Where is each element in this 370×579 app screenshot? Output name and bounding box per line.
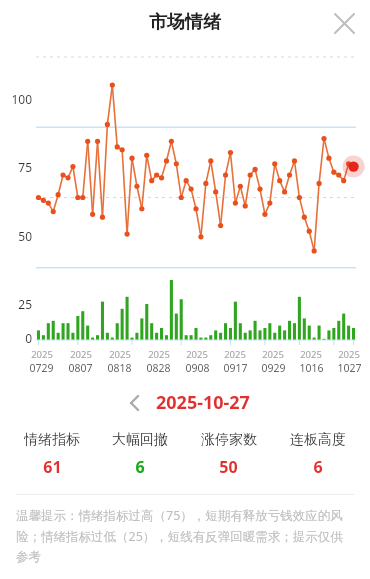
staticText: 0908 [185, 361, 210, 375]
staticText: 6 [135, 456, 145, 478]
staticText: 2025 [262, 348, 284, 361]
staticText: 2025 [31, 348, 53, 361]
staticText: 75 [18, 159, 32, 175]
staticText: 1027 [337, 361, 362, 375]
staticText: 6 [313, 456, 323, 478]
button[interactable]: 2025-10-27 [156, 390, 250, 415]
staticText: 2025 [109, 348, 131, 361]
staticText: 情绪指标 [24, 431, 80, 449]
staticText: 50 [18, 228, 32, 244]
staticText: 2025-10-27 [156, 390, 250, 415]
staticText: 61 [43, 456, 62, 478]
staticText: 0828 [146, 361, 171, 375]
staticText: 2025 [70, 348, 92, 361]
staticText: 2025 [300, 348, 322, 361]
staticText: 2025 [186, 348, 208, 361]
staticText: 0917 [223, 361, 248, 375]
button[interactable]: Close [326, 5, 362, 41]
staticText: 2025 [148, 348, 170, 361]
staticText: 1016 [299, 361, 324, 375]
button[interactable]: 涨停家数 [184, 431, 273, 478]
staticText: 0 [25, 330, 32, 346]
staticText: 100 [11, 91, 32, 107]
staticText: 涨停家数 [201, 431, 257, 449]
staticText: 2025 [338, 348, 360, 361]
button[interactable]: Previous day [120, 388, 150, 418]
staticText: 0807 [68, 361, 93, 375]
staticText: 连板高度 [290, 431, 346, 449]
staticText: 25 [18, 296, 32, 312]
staticText: 0818 [107, 361, 132, 375]
staticText: 2025 [224, 348, 246, 361]
staticText: 温馨提示：情绪指标过高（75），短期有释放亏钱效应的风险；情绪指标过低（25），… [16, 507, 354, 565]
staticText: 大幅回撤 [112, 431, 168, 449]
button[interactable]: 大幅回撤 [96, 431, 184, 478]
staticText: 50 [219, 456, 238, 478]
staticText: 0729 [29, 361, 54, 375]
staticText: 0929 [261, 361, 286, 375]
button[interactable]: 连板高度 [273, 431, 362, 478]
button[interactable]: 情绪指标 [8, 431, 96, 478]
staticText: 市场情绪 [149, 11, 221, 34]
